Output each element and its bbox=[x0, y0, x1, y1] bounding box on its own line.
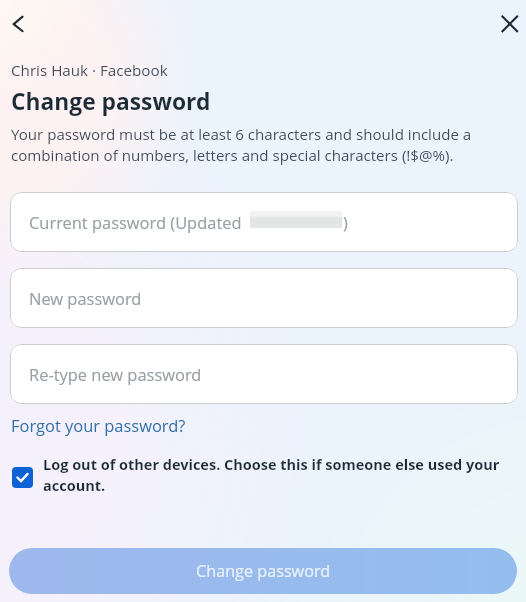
staticText: ) bbox=[343, 211, 348, 233]
button[interactable]: Log out of other devices. Choose this if… bbox=[0, 456, 526, 496]
button[interactable]: Current password (Updated bbox=[10, 192, 518, 252]
button[interactable]: Close bbox=[490, 4, 526, 40]
staticText: Current password (Updated bbox=[29, 211, 246, 233]
staticText: Change password bbox=[11, 86, 211, 117]
staticText: Log out of other devices. Choose this if… bbox=[43, 455, 515, 495]
button[interactable]: Back bbox=[0, 4, 36, 40]
staticText: Chris Hauk · Facebook bbox=[11, 60, 168, 81]
staticText: Forgot your password? bbox=[11, 414, 186, 436]
staticText: Your password must be at least 6 charact… bbox=[11, 124, 487, 165]
staticText: New password bbox=[29, 287, 142, 309]
staticText: Re-type new password bbox=[29, 363, 202, 385]
button[interactable]: Change password bbox=[9, 548, 517, 594]
button[interactable]: Re-type new password bbox=[10, 344, 518, 404]
button[interactable]: New password bbox=[10, 268, 518, 328]
button[interactable]: Forgot your password? bbox=[11, 414, 186, 436]
staticText: Change password bbox=[196, 560, 331, 582]
